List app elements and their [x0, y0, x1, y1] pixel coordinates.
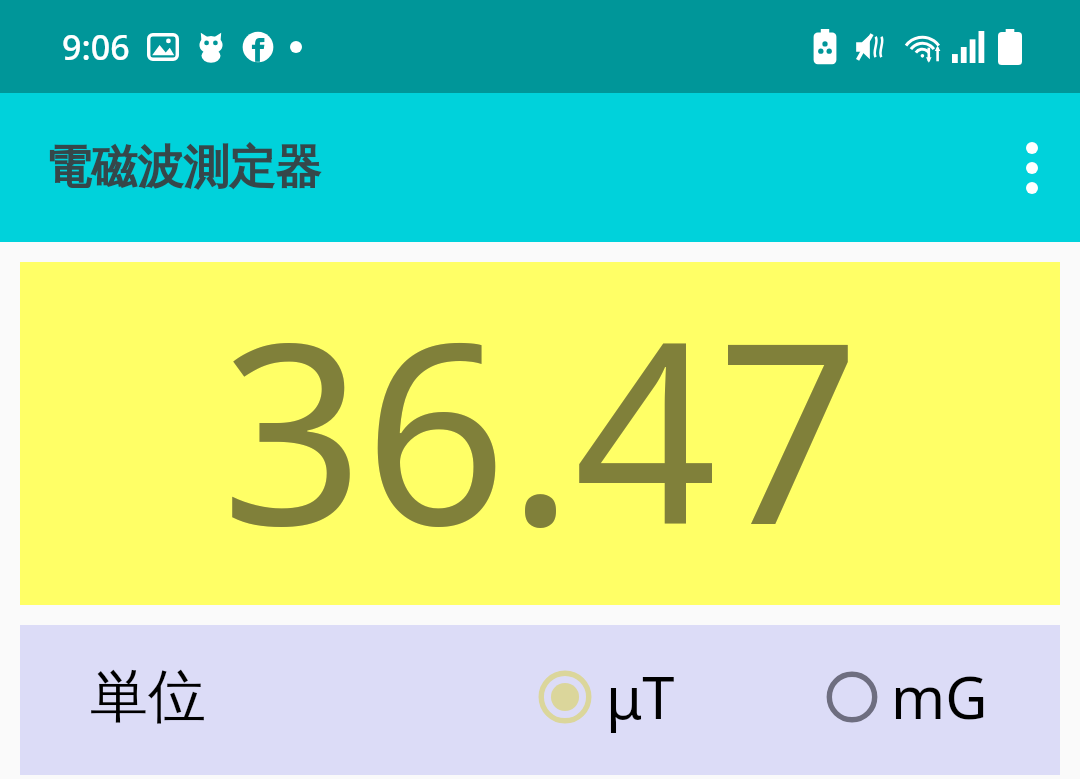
staticText: 36.47 — [221, 257, 860, 598]
staticText: μT — [606, 657, 675, 736]
staticText: 単位 — [90, 660, 206, 733]
button[interactable]: μT — [538, 657, 675, 736]
button[interactable]: More options — [990, 126, 1074, 210]
staticText: mG — [891, 657, 988, 736]
button[interactable]: mG — [825, 657, 988, 736]
staticText: 9:06 — [62, 24, 130, 70]
button[interactable]: 36.47 — [20, 262, 1060, 605]
staticText: 電磁波測定器 — [45, 139, 321, 197]
